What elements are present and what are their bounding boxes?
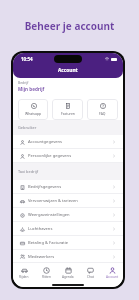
button[interactable]: Account [101,263,123,283]
button[interactable]: Betaling & Facturatie [13,236,123,250]
staticText: Mijn bedrijf [18,86,45,92]
staticText: Agenda [62,275,74,279]
staticText: Taxi bedrijf [18,169,39,174]
staticText: Vervoerswijzen & tarieven [28,198,112,204]
staticText: Account [106,275,119,279]
button[interactable]: Persoonlijke gegevens [13,149,123,163]
button[interactable]: Accountgegevens [13,135,123,149]
button[interactable]: Medewerkers [13,250,123,263]
staticText: Whatsapp [25,111,42,116]
button[interactable]: Facturen [52,99,83,120]
button[interactable]: Rijden [13,263,35,283]
button[interactable]: Chat [79,263,101,283]
staticText: Rijden [19,275,29,279]
staticText: Ritten [42,275,51,279]
staticText: Accountgegevens [28,139,112,145]
button[interactable]: Bedrijfsgegevens [13,180,123,194]
staticText: Chat [87,275,94,279]
button[interactable]: Weergaveinstellingen [13,208,123,222]
staticText: Weergaveinstellingen [28,212,112,218]
button[interactable]: Ritten [35,263,57,283]
staticText: 10:54 [21,56,33,62]
staticText: Facturen [61,111,75,116]
button[interactable]: Vervoerswijzen & tarieven [13,194,123,208]
staticText: Beheer je account [0,19,139,33]
staticText: Persoonlijke gegevens [28,153,112,159]
staticText: Betaling & Facturatie [28,240,112,246]
staticText: Bedrijf [18,80,29,85]
staticText: FAQ [99,111,106,116]
button[interactable]: Bedrijf [13,78,123,99]
staticText: Luchthavens [28,226,112,232]
staticText: Bedrijfsgegevens [28,184,112,190]
button[interactable]: Agenda [57,263,79,283]
staticText: Gebruiker [18,125,37,130]
button[interactable]: Luchthavens [13,222,123,236]
staticText: Medewerkers [28,254,112,260]
staticText: Account [58,67,78,74]
button[interactable]: Whatsapp [18,99,48,120]
button[interactable]: FAQ [87,99,118,120]
